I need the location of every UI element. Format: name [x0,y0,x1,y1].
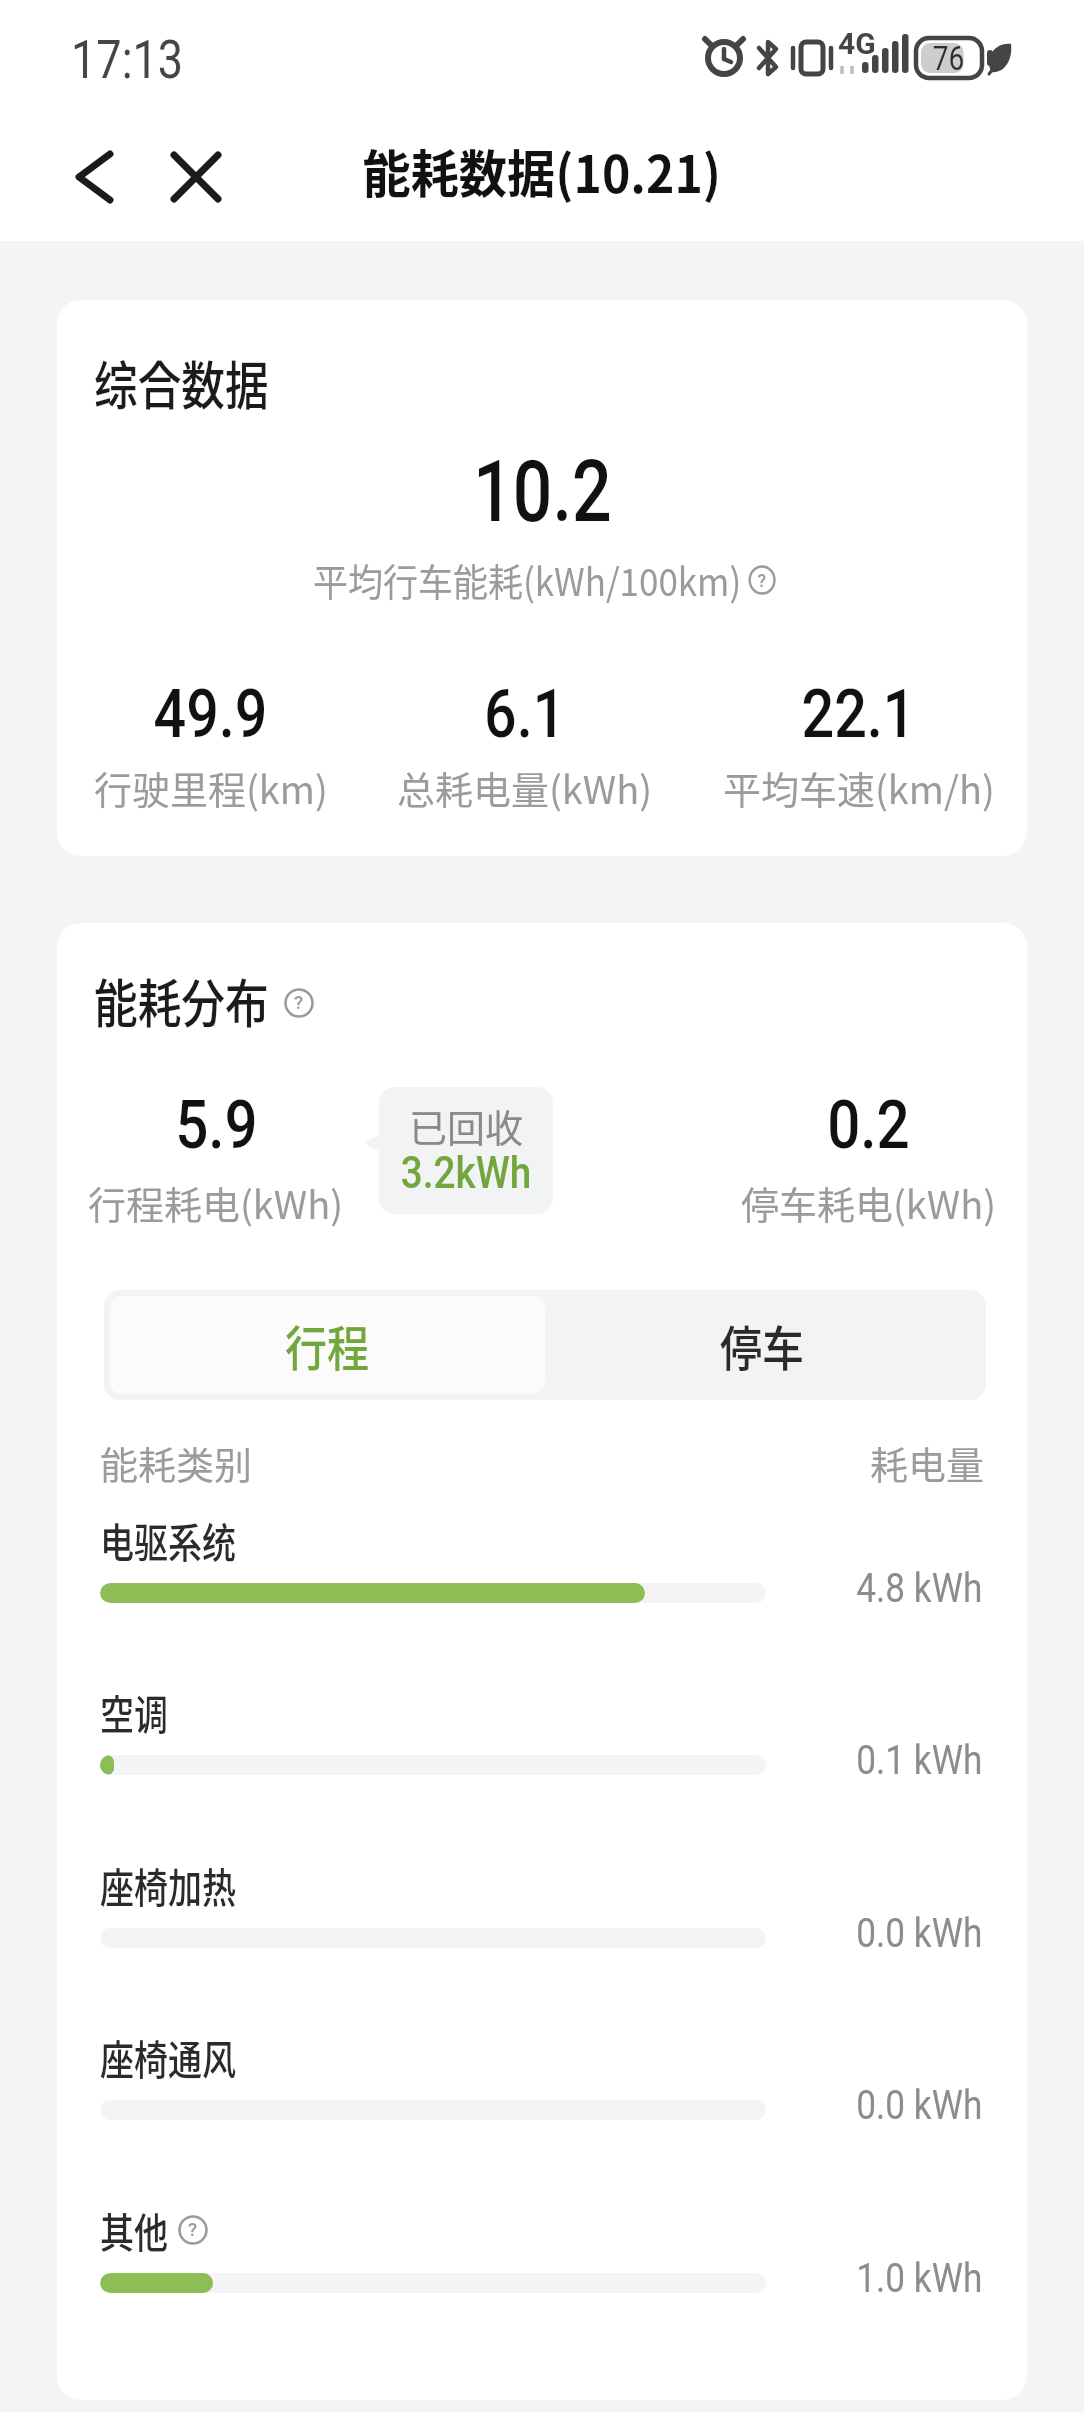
staticText: 0.2 [827,1086,910,1165]
staticText: 平均车速(km/h) [723,760,995,815]
staticText: ? [294,992,304,1014]
staticText: 1.0 kWh [856,2255,983,2302]
staticText: 电驱系统 [100,1510,236,1569]
staticText: 4G [838,26,876,61]
staticText: 耗电量 [870,1435,985,1490]
staticText: 总耗电量(kWh) [397,760,653,815]
staticText: 10.2 [473,441,612,541]
staticText: 76 [933,39,965,78]
staticText: ? [757,569,767,591]
staticText: 座椅加热 [100,1855,236,1914]
staticText: 6.1 [484,676,566,753]
staticText: 49.9 [153,676,267,753]
staticText: 0.0 kWh [856,1910,983,1957]
staticText: 停车 [720,1310,805,1380]
staticText: 其他 [100,2200,168,2259]
staticText: 0.1 kWh [856,1737,983,1784]
staticText: 0.0 kWh [856,2082,983,2129]
staticText: 空调 [100,1682,168,1741]
button[interactable]: 停车 [545,1296,980,1394]
staticText: 5.9 [175,1086,258,1165]
staticText: 能耗数据(10.21) [362,134,722,208]
staticText: 已回收 [409,1098,524,1153]
staticText: 停车耗电(kWh) [741,1175,997,1230]
staticText: 17:13 [71,29,183,91]
button[interactable]: 行程 [110,1296,545,1394]
staticText: 3.2kWh [401,1146,531,1199]
staticText: 能耗分布 [94,963,270,1038]
staticText: 综合数据 [94,345,270,420]
staticText: 22.1 [801,676,915,753]
staticText: 行程 [285,1310,370,1380]
button[interactable] [160,141,232,213]
button[interactable] [58,141,130,213]
staticText: 能耗类别 [100,1435,253,1490]
staticText: 行驶里程(km) [94,760,328,815]
staticText: ? [188,2219,198,2241]
staticText: 座椅通风 [100,2027,236,2086]
staticText: 行程耗电(kWh) [88,1175,344,1230]
staticText: 4.8 kWh [856,1565,983,1612]
staticText: 平均行车能耗(kWh/100km) [313,552,742,607]
